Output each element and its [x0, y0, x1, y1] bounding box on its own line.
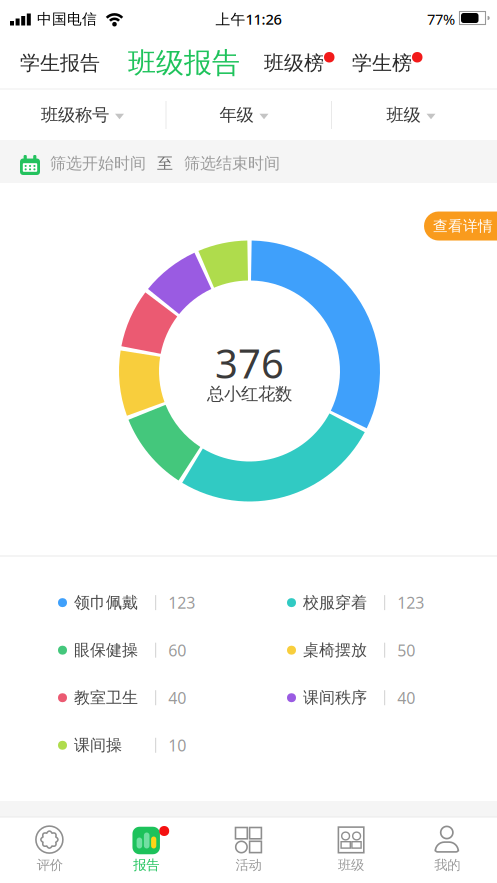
staticText: 40: [168, 687, 186, 708]
staticText: 40: [397, 687, 415, 708]
staticText: 50: [397, 639, 415, 661]
staticText: 123: [397, 592, 424, 613]
button[interactable]: 学生榜: [352, 43, 412, 83]
button[interactable]: [199, 817, 298, 883]
button[interactable]: 班级: [331, 90, 497, 140]
button[interactable]: 学生报告: [20, 43, 100, 83]
staticText: 10: [168, 735, 186, 756]
staticText: 上午11:26: [215, 9, 281, 29]
staticText: 学生榜: [352, 51, 412, 75]
staticText: 筛选开始时间: [50, 154, 146, 173]
button[interactable]: 查看详情: [424, 211, 497, 240]
staticText: 60: [168, 639, 186, 661]
staticText: 班级称号: [41, 104, 109, 126]
staticText: 筛选结束时间: [184, 154, 280, 173]
button[interactable]: [398, 817, 497, 883]
staticText: 班级报告: [128, 46, 240, 80]
button[interactable]: 班级报告: [128, 42, 240, 84]
staticText: 至: [157, 154, 173, 173]
button[interactable]: [298, 817, 398, 883]
staticText: 眼保健操: [74, 640, 138, 660]
button[interactable]: 班级称号: [0, 90, 165, 140]
staticText: 桌椅摆放: [303, 640, 367, 660]
button[interactable]: [99, 817, 199, 883]
button[interactable]: 年级: [165, 90, 331, 140]
staticText: 班级: [386, 104, 420, 126]
staticText: 课间秩序: [303, 688, 367, 708]
staticText: 查看详情: [433, 217, 493, 235]
staticText: 课间操: [74, 735, 122, 755]
staticText: 评价: [37, 857, 63, 873]
staticText: 领巾佩戴: [74, 593, 138, 612]
staticText: 教室卫生: [74, 688, 138, 708]
staticText: 77%: [427, 9, 455, 29]
button[interactable]: [0, 817, 99, 883]
staticText: 中国电信: [37, 10, 97, 28]
button[interactable]: 筛选开始时间: [0, 140, 497, 183]
staticText: 我的: [434, 857, 460, 873]
staticText: 学生报告: [20, 51, 100, 75]
staticText: 376: [215, 336, 284, 389]
staticText: 班级榜: [264, 51, 324, 75]
staticText: 123: [168, 592, 195, 613]
staticText: 班级: [338, 857, 364, 873]
staticText: 活动: [235, 857, 261, 873]
staticText: 年级: [219, 104, 253, 126]
staticText: 报告: [133, 857, 159, 873]
staticText: 校服穿着: [303, 593, 367, 612]
staticText: 总小红花数: [207, 383, 292, 405]
button[interactable]: 班级榜: [264, 43, 324, 83]
